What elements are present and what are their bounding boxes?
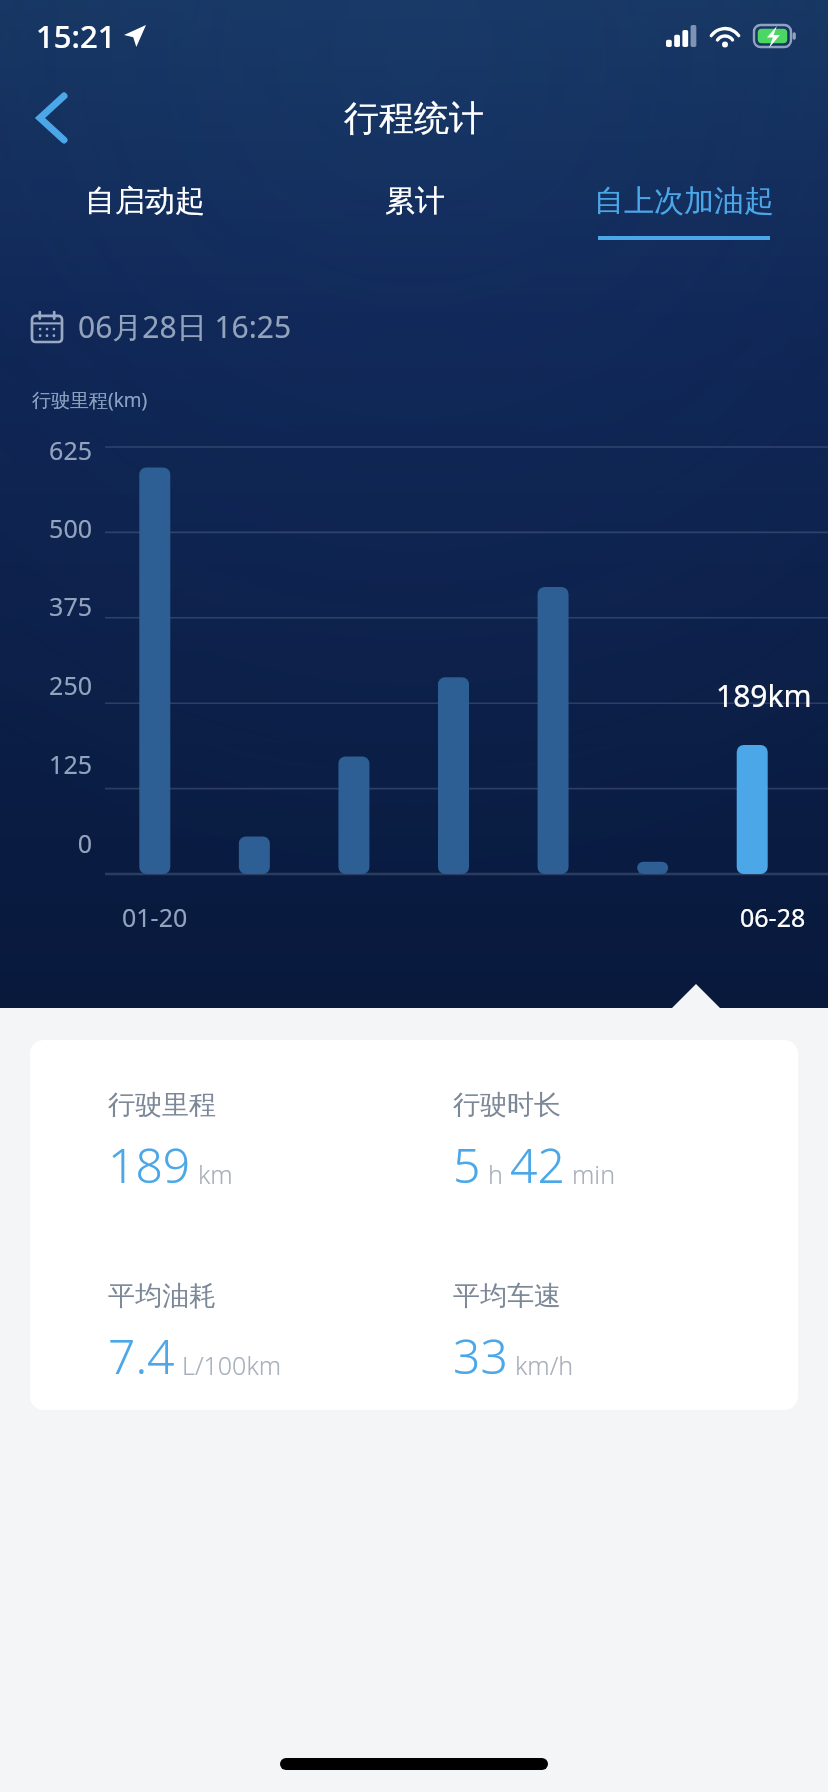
button[interactable]: 自上次加油起 — [549, 182, 818, 240]
button[interactable]: 行驶里程 — [30, 1040, 798, 1410]
staticText: 250 — [49, 668, 92, 702]
button[interactable]: 自启动起 — [10, 182, 280, 240]
staticText: 01-20 — [122, 900, 188, 934]
staticText: 平均车速 — [453, 1279, 561, 1313]
staticText: 125 — [49, 747, 92, 781]
staticText: 06-28 — [740, 900, 806, 934]
staticText: 5 — [453, 1132, 481, 1197]
staticText: 0 — [77, 826, 92, 860]
staticText: 375 — [49, 589, 92, 623]
button[interactable]: Back — [12, 78, 92, 158]
staticText: 行驶里程 — [108, 1088, 216, 1122]
staticText: h — [488, 1157, 503, 1191]
staticText: 189 — [108, 1132, 191, 1197]
staticText: 累计 — [385, 182, 445, 220]
staticText: L/100km — [182, 1348, 282, 1382]
staticText: km/h — [515, 1348, 574, 1382]
staticText: 行程统计 — [344, 96, 484, 140]
staticText: 15:21 — [36, 15, 116, 57]
staticText: 625 — [49, 433, 92, 467]
staticText: 自启动起 — [85, 182, 205, 220]
staticText: km — [198, 1157, 233, 1191]
staticText: 自上次加油起 — [594, 182, 774, 220]
staticText: 平均油耗 — [108, 1279, 216, 1313]
staticText: 189km — [716, 675, 812, 716]
staticText: 42 — [510, 1132, 565, 1197]
staticText: 06月28日 16:25 — [78, 306, 292, 347]
staticText: min — [572, 1157, 616, 1191]
staticText: 7.4 — [108, 1323, 175, 1388]
staticText: 500 — [49, 511, 92, 545]
staticText: 行驶时长 — [453, 1088, 561, 1122]
staticText: 33 — [453, 1323, 508, 1388]
button[interactable]: 累计 — [280, 182, 549, 240]
staticText: 行驶里程(km) — [32, 387, 148, 413]
